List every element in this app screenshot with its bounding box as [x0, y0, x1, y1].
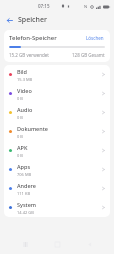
staticText: Video: [17, 87, 32, 94]
staticText: 111 KB: [17, 191, 30, 196]
staticText: 07:15: [38, 3, 50, 9]
staticText: 706 MB: [17, 172, 32, 177]
staticText: Dokumente: [17, 125, 48, 132]
button[interactable]: Video: [4, 84, 110, 103]
staticText: Telefon-Speicher: [9, 34, 57, 42]
staticText: 0 B: [17, 96, 23, 101]
staticText: 0 B: [17, 153, 23, 158]
staticText: APK: [17, 144, 28, 151]
button[interactable]: Bild: [4, 65, 110, 84]
button[interactable]: System: [4, 198, 110, 217]
staticText: 0 B: [17, 134, 23, 139]
staticText: 15.2 GB verwendet: [9, 52, 49, 58]
staticText: Andere: [17, 182, 36, 189]
button[interactable]: Apps: [4, 160, 110, 179]
button[interactable]: Audio: [4, 103, 110, 122]
button[interactable]: Dokumente: [4, 122, 110, 141]
staticText: Apps: [17, 163, 31, 170]
staticText: System: [17, 201, 37, 208]
staticText: 0 B: [17, 115, 23, 120]
staticText: Bild: [17, 68, 27, 75]
button[interactable]: APK: [4, 141, 110, 160]
button[interactable]: Zurück: [3, 14, 15, 26]
staticText: Löschen: [86, 35, 104, 41]
button[interactable]: Andere: [4, 179, 110, 198]
staticText: 15.3 MB: [17, 77, 33, 82]
staticText: 128 GB Gesamt: [72, 52, 105, 58]
staticText: 14.42 GB: [17, 210, 34, 215]
button[interactable]: Löschen: [85, 34, 105, 42]
staticText: Speicher: [18, 15, 47, 25]
staticText: N: [84, 4, 88, 9]
button[interactable]: Letzte Apps: [18, 237, 32, 251]
staticText: Audio: [17, 106, 33, 113]
